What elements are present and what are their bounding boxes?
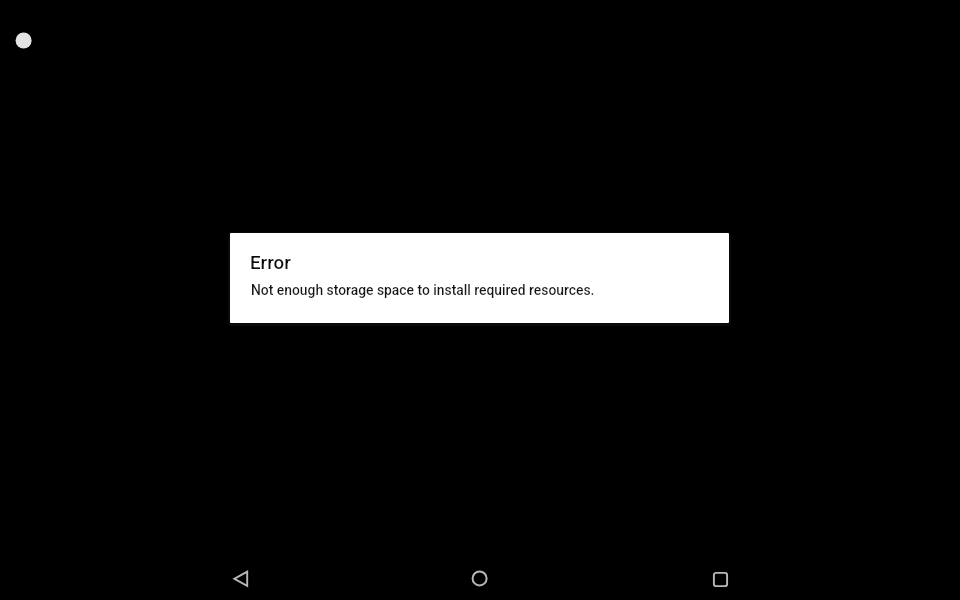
staticText: Error (250, 252, 291, 274)
button[interactable]: Back (216, 555, 264, 600)
button[interactable]: Loading (9, 26, 38, 55)
button[interactable]: Home (456, 555, 504, 600)
staticText: Not enough storage space to install requ… (251, 282, 595, 298)
button[interactable]: Recent apps (696, 555, 744, 600)
